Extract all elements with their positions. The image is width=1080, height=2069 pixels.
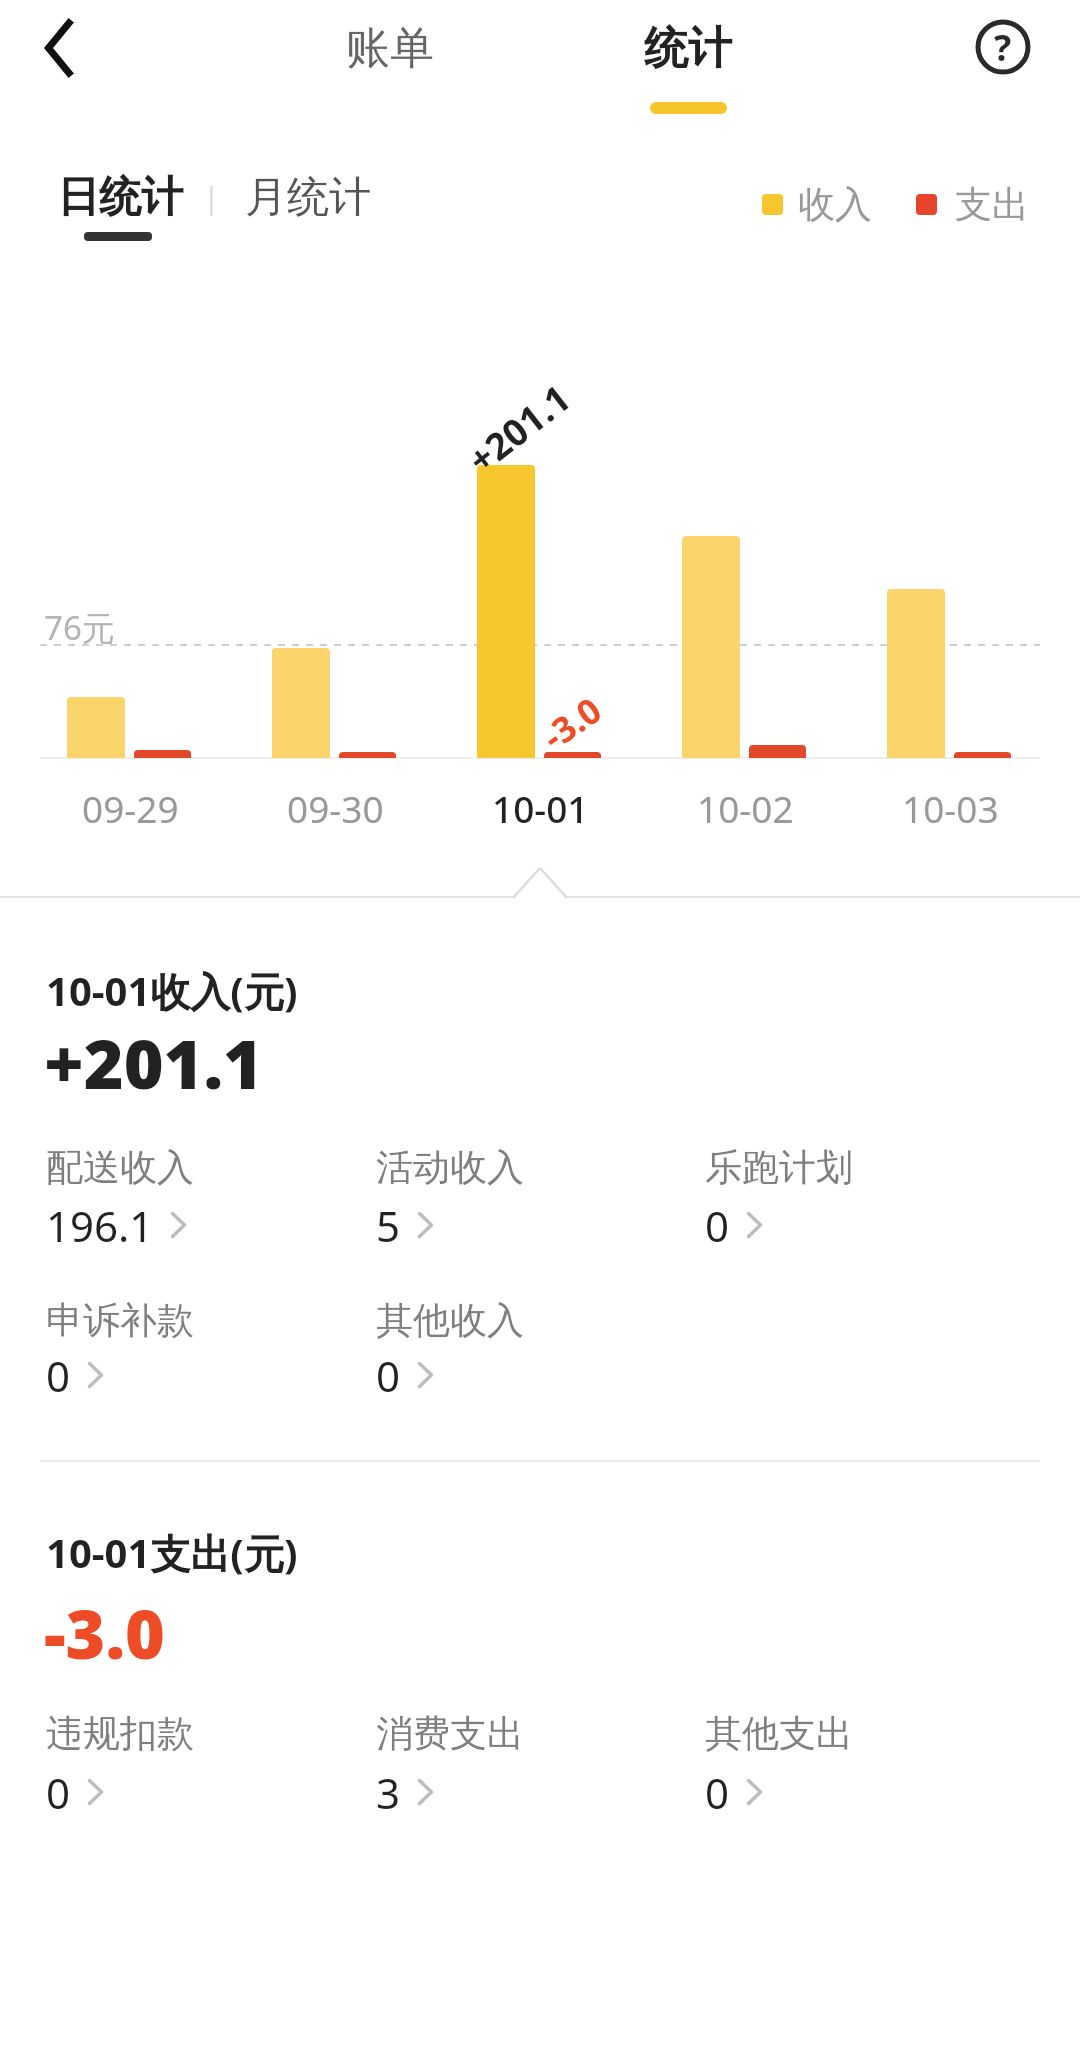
- staticText: 196.1: [46, 1197, 154, 1254]
- staticText: |: [203, 177, 220, 218]
- staticText: 10-01收入(元): [46, 963, 298, 1018]
- button[interactable]: 账单: [280, 8, 500, 88]
- staticText: 支出: [955, 181, 1029, 228]
- button[interactable]: 0: [705, 1757, 762, 1827]
- button[interactable]: 统计: [578, 8, 798, 88]
- staticText: 3: [376, 1764, 401, 1821]
- button[interactable]: 0: [376, 1340, 433, 1410]
- staticText: 申诉补款: [46, 1297, 194, 1344]
- staticText: 账单: [346, 21, 434, 76]
- staticText: 配送收入: [46, 1144, 194, 1191]
- button[interactable]: 0: [46, 1340, 103, 1410]
- staticText: ?: [994, 23, 1012, 72]
- button[interactable]: 月统计: [235, 157, 380, 237]
- staticText: 月统计: [245, 171, 371, 224]
- staticText: +201.1: [44, 1016, 263, 1109]
- staticText: 09-30: [287, 783, 384, 833]
- staticText: 统计: [644, 21, 732, 76]
- staticText: 5: [376, 1197, 401, 1254]
- button[interactable]: 196.1: [46, 1190, 186, 1260]
- staticText: 其他支出: [705, 1710, 853, 1757]
- staticText: 0: [705, 1764, 730, 1821]
- staticText: 0: [705, 1197, 730, 1254]
- button[interactable]: [28, 18, 88, 78]
- button[interactable]: 5: [376, 1190, 433, 1260]
- staticText: 活动收入: [376, 1144, 524, 1191]
- staticText: -3.0: [44, 1586, 165, 1679]
- staticText: 0: [46, 1764, 71, 1821]
- staticText: 0: [376, 1347, 401, 1404]
- button[interactable]: 0: [46, 1757, 103, 1827]
- staticText: 10-01支出(元): [46, 1525, 298, 1580]
- staticText: 09-29: [82, 783, 179, 833]
- staticText: 10-01: [492, 783, 589, 833]
- staticText: -3.0: [533, 686, 611, 760]
- staticText: 日统计: [57, 171, 183, 224]
- button[interactable]: 3: [376, 1757, 433, 1827]
- staticText: 10-03: [902, 783, 999, 833]
- staticText: 消费支出: [376, 1710, 524, 1757]
- button[interactable]: 0: [705, 1190, 762, 1260]
- staticText: 乐跑计划: [705, 1144, 853, 1191]
- staticText: +201.1: [457, 372, 580, 483]
- button[interactable]: ?: [972, 16, 1034, 78]
- staticText: 10-02: [697, 783, 794, 833]
- staticText: 76元: [44, 605, 115, 650]
- staticText: 违规扣款: [46, 1710, 194, 1757]
- button[interactable]: 日统计: [40, 157, 200, 237]
- staticText: 其他收入: [376, 1297, 524, 1344]
- staticText: 收入: [798, 181, 872, 228]
- staticText: 0: [46, 1347, 71, 1404]
